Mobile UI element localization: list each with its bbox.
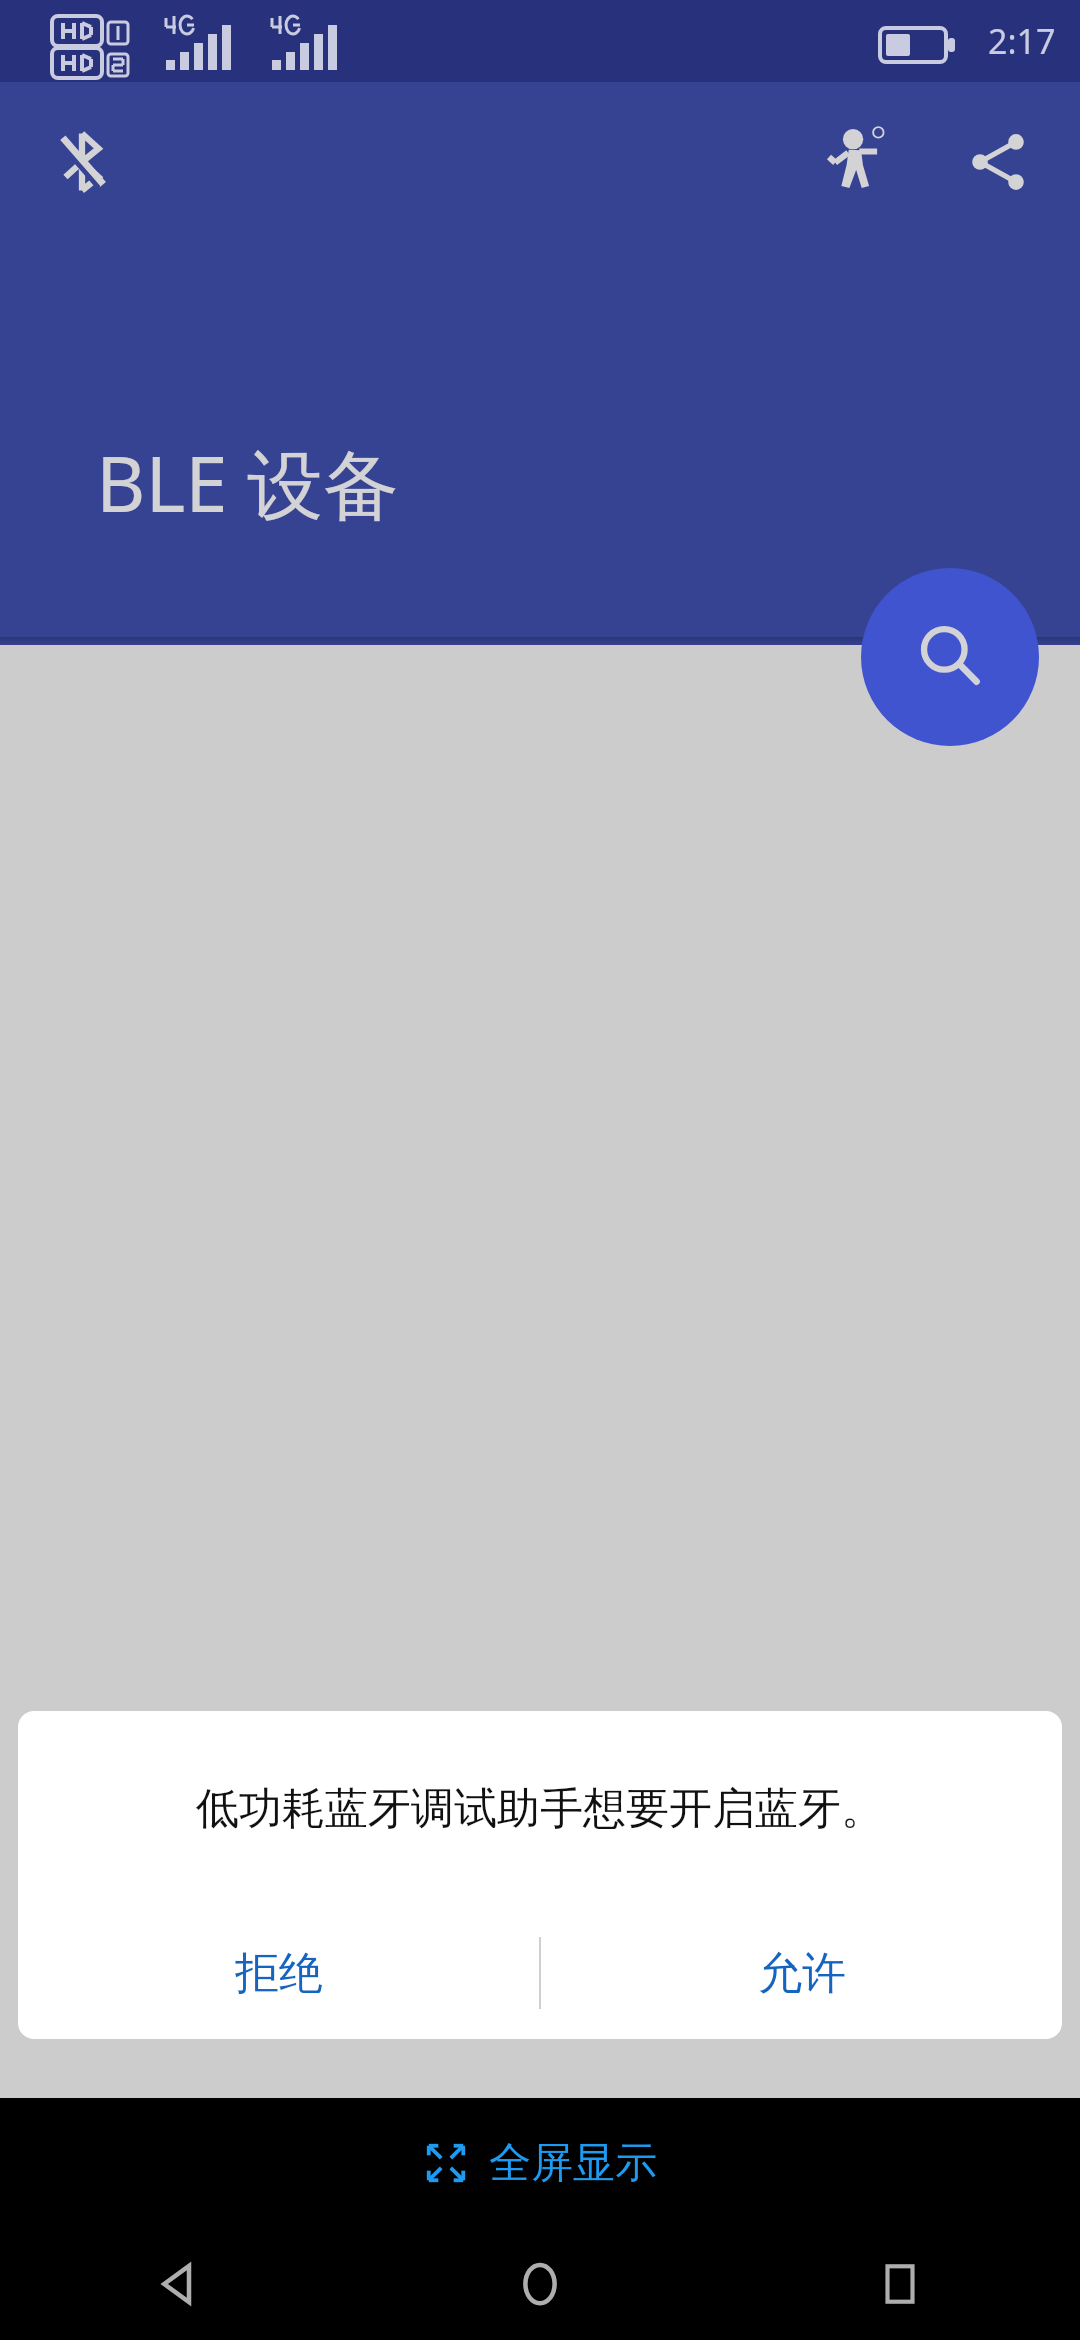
staticText: BLE 设备 [96, 431, 400, 535]
button[interactable]: Share [950, 114, 1046, 210]
staticText: 全屏显示 [489, 2137, 657, 2190]
staticText: 低功耗蓝牙调试助手想要开启蓝牙。 [196, 1782, 884, 1836]
staticText: 允许 [758, 1946, 846, 2001]
button[interactable]: Bluetooth disabled [34, 114, 130, 210]
button[interactable]: 允许 [541, 1907, 1062, 2039]
button[interactable]: Home [360, 2228, 720, 2340]
staticText: 拒绝 [235, 1946, 323, 2001]
button[interactable]: Recents [720, 2228, 1080, 2340]
button[interactable]: 全屏显示 [0, 2098, 1080, 2228]
button[interactable]: Person [810, 114, 906, 210]
button[interactable]: 拒绝 [18, 1907, 539, 2039]
staticText: 2:17 [988, 18, 1056, 64]
button[interactable]: Search [861, 568, 1039, 746]
button[interactable]: Back [0, 2228, 360, 2340]
